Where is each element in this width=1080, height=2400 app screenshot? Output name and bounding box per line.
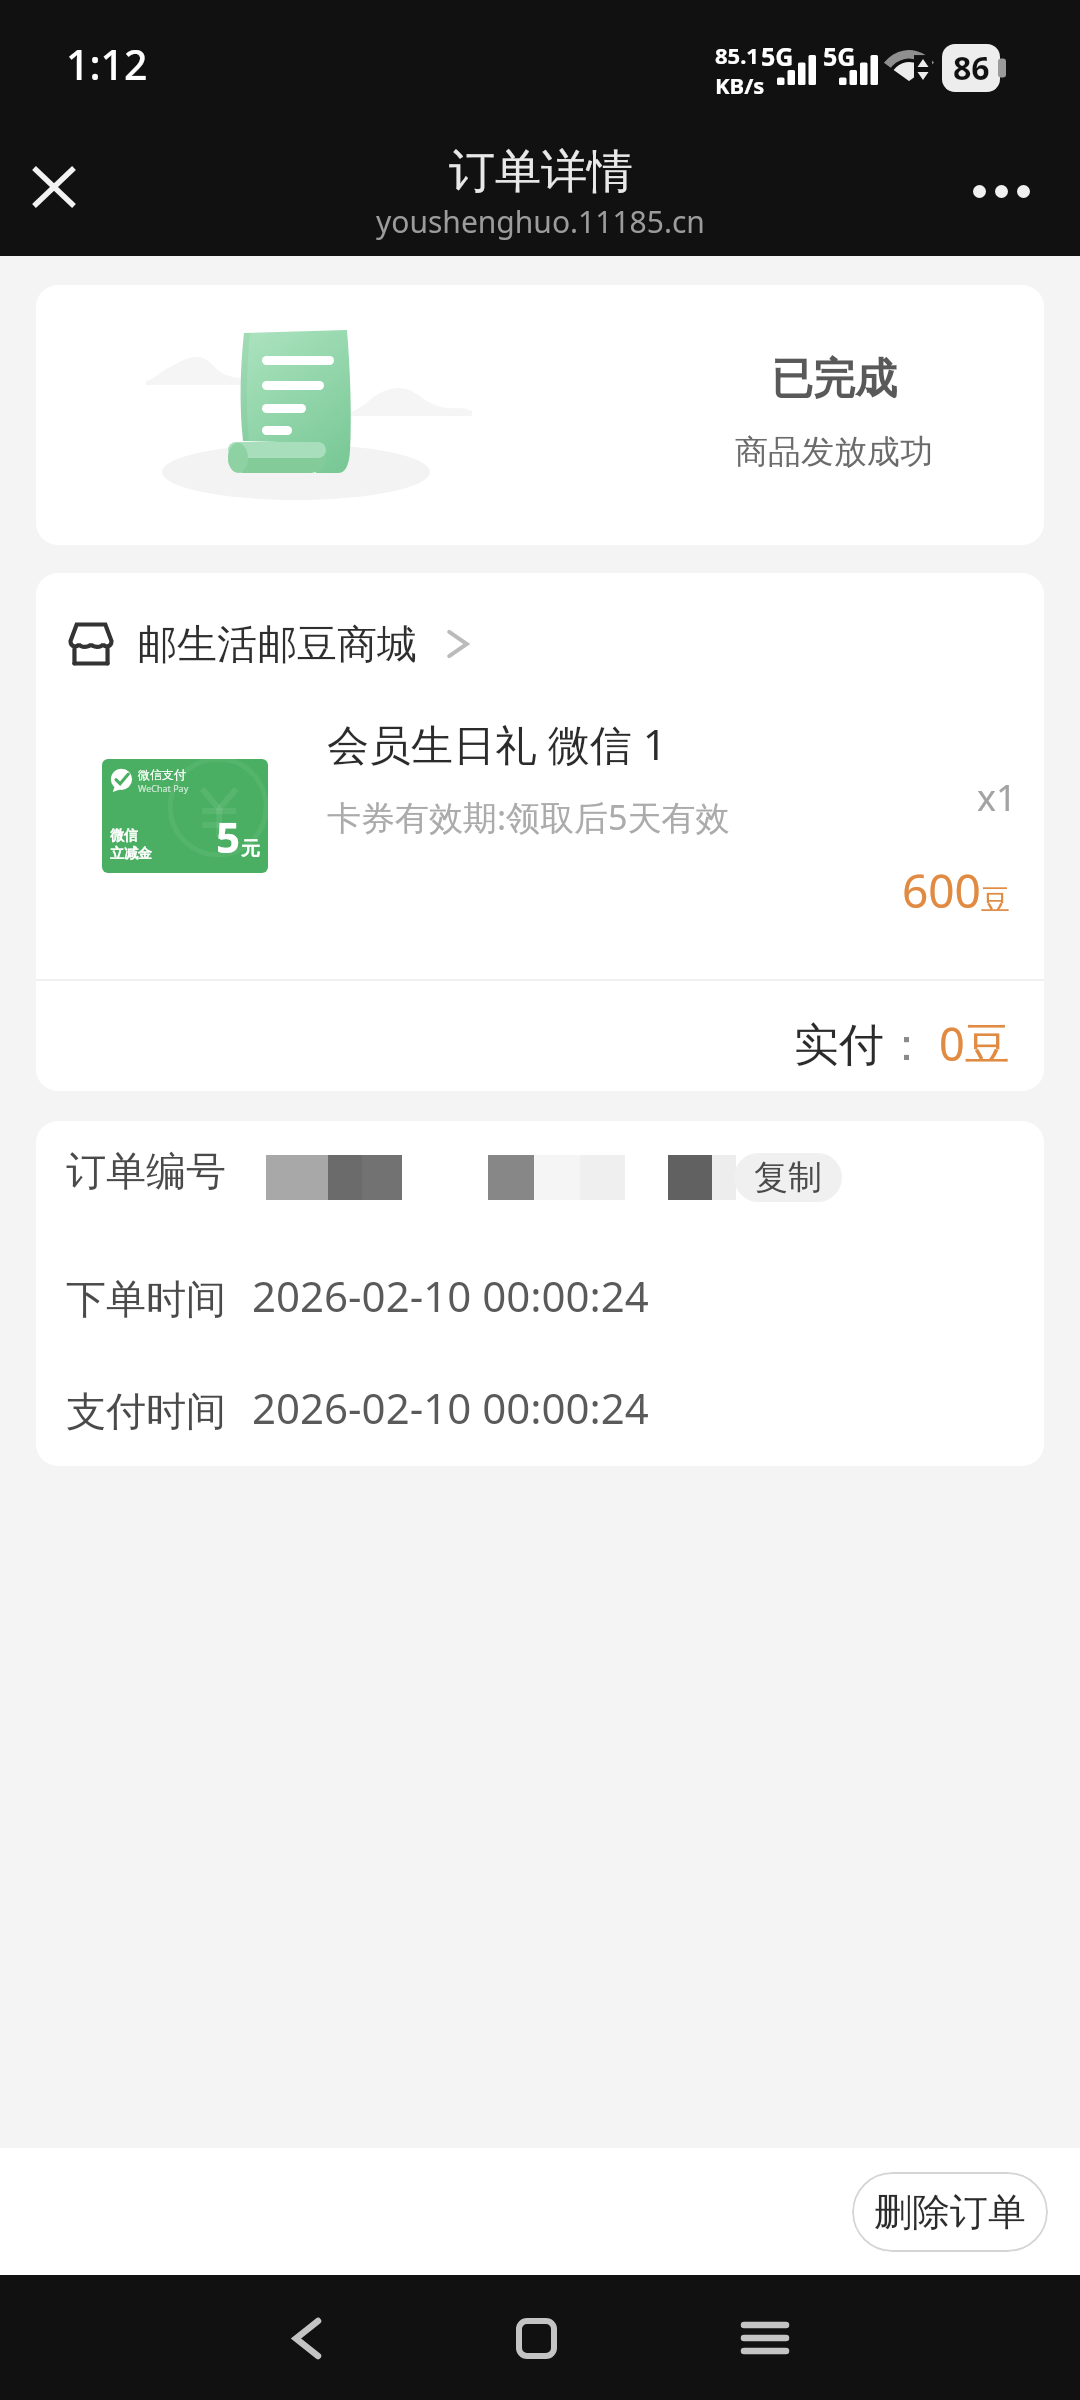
staticText: 微信 [110, 827, 138, 845]
button[interactable]: 删除订单 [852, 2172, 1048, 2252]
button[interactable]: 复制 [734, 1153, 842, 1202]
staticText: 实付 [794, 1017, 884, 1074]
staticText: 85.1 [715, 40, 759, 70]
staticText: 会员生日礼 微信 1 [327, 715, 667, 772]
button[interactable]: Close [4, 137, 104, 237]
staticText: 商品发放成功 [735, 431, 933, 473]
staticText: 豆 [965, 1017, 1010, 1074]
staticText: 支付时间 [66, 1386, 226, 1436]
staticText: 立减金 [110, 845, 152, 863]
staticText: 订单编号 [66, 1146, 226, 1196]
staticText: 600 [902, 859, 981, 922]
button[interactable]: 邮生活邮豆商城 [69, 619, 469, 669]
staticText: 复制 [754, 1156, 822, 1199]
staticText: 删除订单 [874, 2188, 1026, 2236]
staticText: 已完成 [771, 353, 897, 406]
staticText: 86 [953, 46, 990, 90]
staticText: ： [884, 1017, 929, 1074]
staticText: 元 [241, 837, 260, 861]
staticText: 1:12 [66, 36, 148, 92]
staticText: 5G [823, 39, 856, 73]
staticText: 下单时间 [66, 1274, 226, 1324]
staticText: 2026-02-10 00:00:24 [252, 1379, 649, 1436]
button[interactable]: Recent apps [715, 2288, 815, 2388]
button[interactable]: More options [946, 141, 1056, 241]
staticText: youshenghuo.11185.cn [376, 201, 705, 242]
staticText: 邮生活邮豆商城 [137, 619, 417, 669]
staticText: 0 [939, 1013, 965, 1074]
staticText: 5 [216, 808, 241, 865]
staticText: 微信支付 [138, 767, 186, 782]
staticText: 豆 [981, 882, 1010, 919]
staticText: 2026-02-10 00:00:24 [252, 1267, 649, 1324]
staticText: 卡券有效期:领取后5天有效 [327, 794, 730, 840]
staticText: WeChat Pay [138, 782, 189, 794]
button[interactable]: Back [257, 2288, 357, 2388]
staticText: KB/s [715, 70, 765, 100]
staticText: 订单详情 [449, 143, 633, 201]
staticText: 5G [761, 39, 794, 73]
button[interactable]: Home [486, 2288, 586, 2388]
staticText: x1 [977, 773, 1017, 822]
